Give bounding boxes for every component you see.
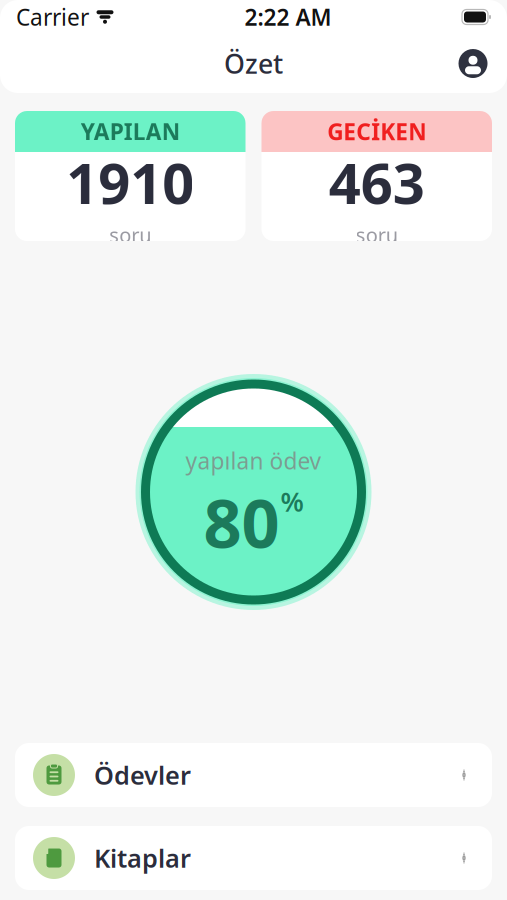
staticText: Ödevler	[94, 758, 191, 792]
staticText: Özet	[224, 46, 283, 81]
button[interactable]: Profile	[451, 41, 495, 85]
staticText: %	[280, 484, 303, 519]
staticText: 463	[329, 145, 425, 219]
button[interactable]: Ödevler	[15, 743, 492, 807]
staticText: GECİKEN	[327, 116, 426, 146]
staticText: Kitaplar	[94, 841, 191, 875]
staticText: 80	[203, 478, 279, 566]
staticText: yapılan ödev	[185, 446, 321, 476]
staticText: Carrier	[16, 2, 89, 32]
staticText: soru	[109, 221, 151, 248]
button[interactable]: Kitaplar	[15, 826, 492, 890]
staticText: 1910	[66, 145, 194, 219]
staticText: soru	[356, 221, 398, 248]
staticText: YAPILAN	[81, 116, 180, 146]
staticText: 2:22 AM	[244, 2, 331, 32]
